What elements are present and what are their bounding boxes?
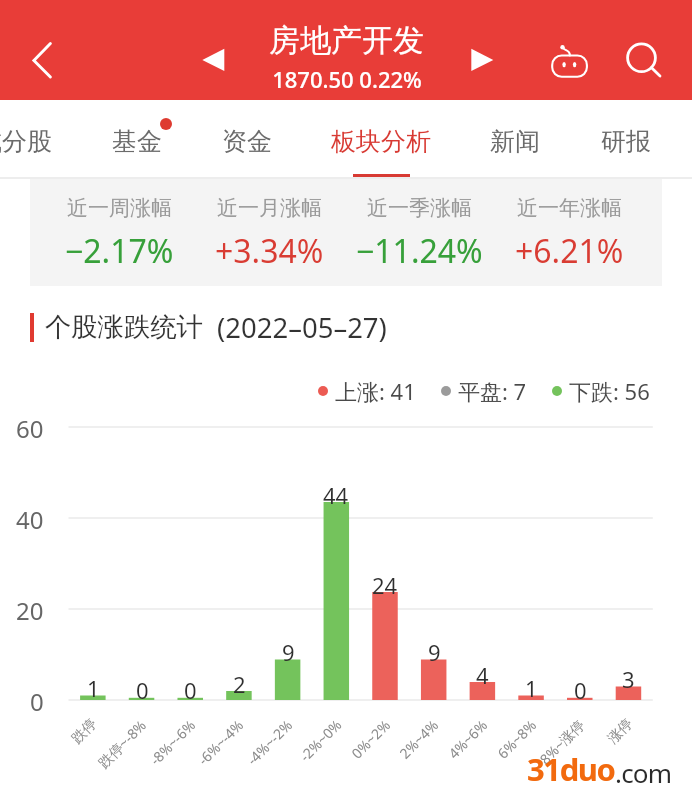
staticText: 近一周涨幅	[67, 195, 172, 221]
staticText: -6%~-4%	[194, 715, 247, 769]
staticText: 新闻	[490, 126, 540, 157]
staticText: +3.34%	[215, 229, 324, 273]
staticText: 0	[136, 675, 149, 705]
staticText: 2%~4%	[395, 715, 442, 763]
staticText: -2%~0%	[295, 715, 345, 765]
staticText: 上涨: 41	[335, 376, 416, 406]
staticText: 0	[30, 685, 44, 718]
staticText: 涨停	[604, 715, 637, 748]
button[interactable]: 板块分析	[301, 100, 461, 176]
button[interactable]: Next sector	[462, 40, 502, 80]
staticText: 2	[233, 669, 246, 699]
button[interactable]: 研报	[571, 100, 681, 176]
staticText: 1	[87, 673, 100, 703]
staticText: 40	[16, 503, 44, 536]
button[interactable]: 新闻	[460, 100, 570, 176]
staticText: 0%~2%	[347, 715, 394, 763]
staticText: 基金	[112, 126, 162, 157]
staticText: (2022–05–27)	[217, 309, 387, 346]
staticText: −2.17%	[65, 229, 174, 273]
staticText: 4	[476, 660, 489, 690]
staticText: 24	[372, 570, 398, 600]
staticText: 跌停	[68, 715, 101, 748]
staticText: 下跌: 56	[569, 376, 650, 406]
button[interactable]: 基金	[82, 100, 192, 176]
button[interactable]: 成分股	[0, 100, 82, 176]
staticText: -8%~-6%	[146, 715, 199, 769]
staticText: 板块分析	[331, 126, 431, 157]
button[interactable]: 资金	[192, 100, 302, 176]
staticText: 4%~6%	[444, 715, 491, 763]
button[interactable]: AI assistant	[540, 36, 600, 96]
staticText: 近一季涨幅	[367, 195, 472, 221]
staticText: 31duo	[527, 748, 615, 790]
staticText: -4%~-2%	[243, 715, 296, 769]
button[interactable]: 近一年涨幅	[494, 195, 644, 273]
staticText: .com	[615, 755, 672, 790]
staticText: 近一月涨幅	[217, 195, 322, 221]
staticText: 成分股	[0, 126, 52, 157]
staticText: 近一年涨幅	[517, 195, 622, 221]
staticText: 9	[282, 637, 295, 667]
button[interactable]: 个股涨跌统计	[30, 309, 387, 346]
staticText: 1870.50 0.22%	[272, 64, 422, 94]
staticText: 平盘: 7	[458, 376, 527, 406]
staticText: 房地产开发	[269, 21, 424, 60]
button[interactable]: 近一月涨幅	[194, 195, 344, 273]
button[interactable]: Previous sector	[193, 40, 233, 80]
staticText: 0	[184, 675, 197, 705]
staticText: 研报	[601, 126, 651, 157]
staticText: 44	[323, 480, 349, 510]
button[interactable]: 上涨: 41	[318, 376, 416, 406]
button[interactable]: Search	[612, 28, 672, 88]
staticText: −11.24%	[356, 229, 483, 273]
staticText: 1	[525, 673, 538, 703]
staticText: 6%~8%	[493, 715, 540, 763]
button[interactable]: 房地产开发	[246, 21, 447, 94]
staticText: 8%~涨停	[535, 715, 588, 768]
staticText: 0	[574, 675, 587, 705]
button[interactable]: 下跌: 56	[552, 376, 650, 406]
button[interactable]: 近一周涨幅	[45, 195, 194, 273]
staticText: +6.21%	[515, 229, 624, 273]
button[interactable]: 近一季涨幅	[344, 195, 494, 273]
staticText: 跌停~-8%	[94, 715, 150, 772]
staticText: 9	[428, 637, 441, 667]
staticText: 资金	[222, 126, 272, 157]
staticText: 个股涨跌统计	[45, 311, 203, 344]
staticText: 3	[622, 664, 635, 694]
staticText: 20	[16, 594, 44, 627]
staticText: 60	[16, 412, 44, 445]
button[interactable]: 平盘: 7	[441, 376, 527, 406]
button[interactable]: Back	[10, 30, 58, 78]
